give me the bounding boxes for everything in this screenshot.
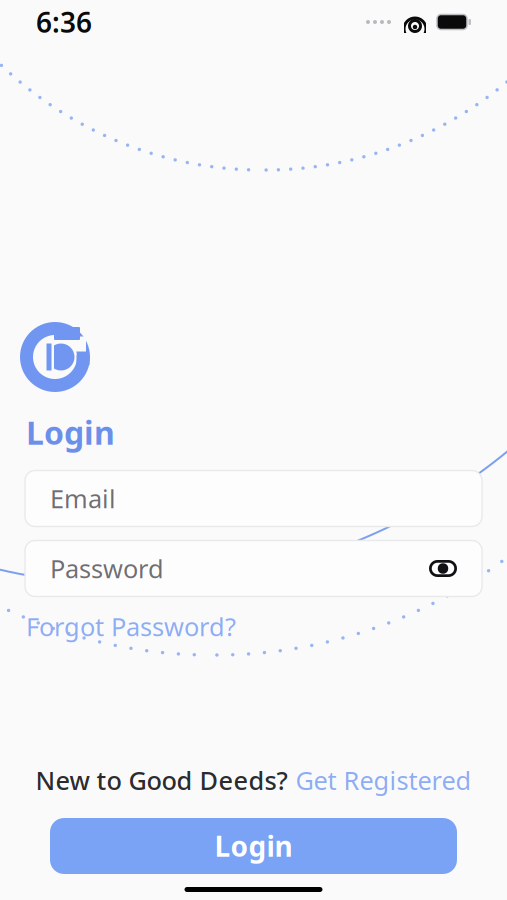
staticText: Email (50, 482, 116, 515)
staticText: Forgot Password? (26, 609, 236, 643)
staticText: Get Registered (295, 763, 471, 797)
staticText: New to Good Deeds? (35, 763, 287, 797)
button[interactable]: Login (50, 818, 457, 874)
staticText: Login (26, 411, 115, 453)
staticText: Password (50, 552, 164, 585)
button[interactable]: Email (25, 470, 482, 526)
button[interactable]: Password (25, 540, 482, 596)
button[interactable]: Forgot Password? (26, 605, 236, 647)
staticText: Login (214, 827, 292, 865)
staticText: 6:36 (36, 3, 92, 41)
button[interactable]: Get Registered (295, 763, 471, 797)
